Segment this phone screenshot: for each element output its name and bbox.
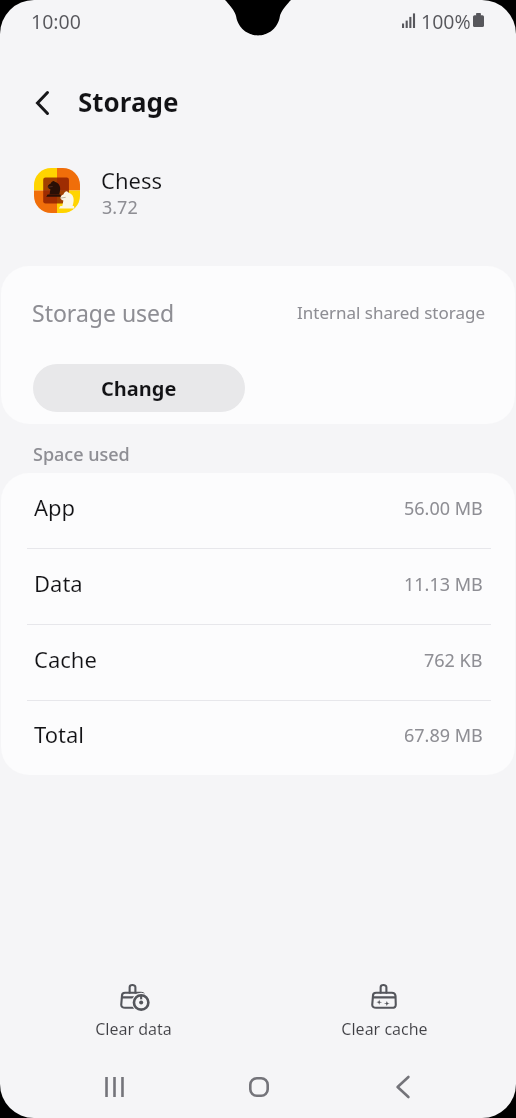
- staticText: Chess: [101, 165, 162, 195]
- staticText: Storage used: [32, 297, 175, 328]
- staticText: 3.72: [102, 195, 138, 220]
- button[interactable]: Back: [19, 80, 65, 126]
- staticText: Storage: [78, 84, 179, 119]
- staticText: 10:00: [31, 8, 81, 35]
- button[interactable]: Data: [1, 549, 515, 625]
- staticText: Clear cache: [341, 1018, 428, 1040]
- staticText: Data: [34, 568, 83, 598]
- staticText: 11.13 MB: [404, 572, 483, 597]
- button[interactable]: App: [1, 473, 515, 549]
- button[interactable]: Back: [373, 1057, 433, 1117]
- staticText: 100%: [421, 8, 471, 35]
- staticText: 56.00 MB: [404, 496, 483, 521]
- staticText: Clear data: [95, 1018, 172, 1040]
- staticText: Space used: [33, 442, 130, 467]
- staticText: 67.89 MB: [404, 723, 483, 748]
- staticText: App: [34, 492, 76, 522]
- button[interactable]: Recents: [84, 1057, 144, 1117]
- button[interactable]: Clear cache: [293, 985, 475, 1040]
- staticText: 762 KB: [424, 648, 483, 673]
- staticText: Internal shared storage: [297, 301, 486, 324]
- button[interactable]: Total: [1, 701, 515, 775]
- button[interactable]: Cache: [1, 625, 515, 701]
- staticText: Cache: [34, 644, 97, 674]
- staticText: Change: [101, 375, 177, 402]
- button[interactable]: Clear data: [42, 985, 224, 1040]
- staticText: Total: [34, 719, 84, 749]
- button[interactable]: Home: [229, 1057, 289, 1117]
- button[interactable]: Change: [33, 364, 245, 412]
